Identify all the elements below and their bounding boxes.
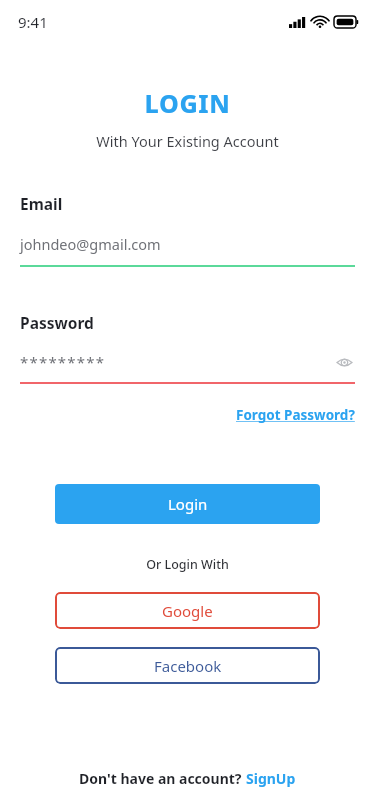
staticText: 9:41 [18,12,48,32]
staticText: With Your Existing Account [0,131,375,151]
button[interactable]: Login [55,484,320,524]
button[interactable]: SignUp [246,769,296,788]
staticText: Login [168,494,208,514]
button[interactable]: Google [55,592,320,629]
button[interactable]: Show password [333,351,355,373]
staticText: johndeo@gmail.com [20,234,161,254]
staticText: SignUp [246,769,296,788]
staticText: Password [20,312,94,333]
button[interactable]: Forgot Password? [236,404,355,426]
staticText: Forgot Password? [236,406,355,424]
staticText: Google [162,601,213,621]
staticText: Email [20,193,63,214]
staticText: ********* [20,352,333,372]
staticText: LOGIN [0,86,375,120]
button[interactable]: Facebook [55,647,320,684]
staticText: Facebook [154,656,222,676]
staticText: Or Login With [0,556,375,573]
staticText: Don't have an account? [79,769,246,788]
